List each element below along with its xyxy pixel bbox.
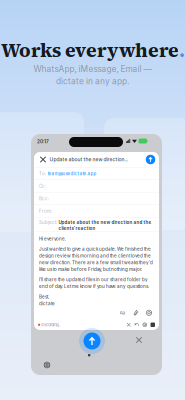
staticText: Recording... xyxy=(40,322,61,327)
staticText: Subject: xyxy=(39,219,57,225)
button[interactable]: Close xyxy=(133,334,145,346)
button[interactable]: Language xyxy=(41,359,53,371)
staticText: Update about the new direction and the xyxy=(58,219,151,225)
staticText: Cc: xyxy=(39,183,46,189)
staticText: To: xyxy=(39,171,46,176)
staticText: Works everywhere xyxy=(1,37,179,63)
button[interactable]: Attach xyxy=(133,310,138,316)
button[interactable]: Close xyxy=(36,153,49,166)
staticText: Update about the new direction... xyxy=(49,156,127,162)
staticText: new direction. There are a few small twe… xyxy=(39,260,153,265)
staticText: clients' reaction xyxy=(58,225,95,231)
staticText: Bcc: xyxy=(39,196,49,201)
staticText: WhatsApp, iMessage, Email — xyxy=(33,64,151,74)
staticText: dictate in any app. xyxy=(56,76,129,86)
button[interactable]: Aa xyxy=(119,310,125,316)
staticText: I'll share the updated files in our shar… xyxy=(39,277,148,282)
staticText: Best, xyxy=(39,294,49,299)
button[interactable]: Record xyxy=(82,331,101,350)
staticText: design review this morning and the clien… xyxy=(39,253,151,259)
staticText: . xyxy=(179,37,185,63)
staticText: Just wanted to give a quick update. We f… xyxy=(39,246,151,252)
staticText: Aa xyxy=(119,310,125,316)
staticText: Hi everyone, xyxy=(39,236,66,241)
staticText: like us to make before Friday, but nothi… xyxy=(39,267,142,272)
staticText: team@usedictate.app xyxy=(47,171,96,176)
staticText: From: xyxy=(39,208,52,214)
staticText: dictate xyxy=(39,301,55,306)
button[interactable]: Camera xyxy=(146,310,152,316)
staticText: end of day. Let me know if you have any … xyxy=(39,284,149,289)
button[interactable]: Send xyxy=(144,153,156,165)
staticText: 20:17 xyxy=(37,138,49,144)
